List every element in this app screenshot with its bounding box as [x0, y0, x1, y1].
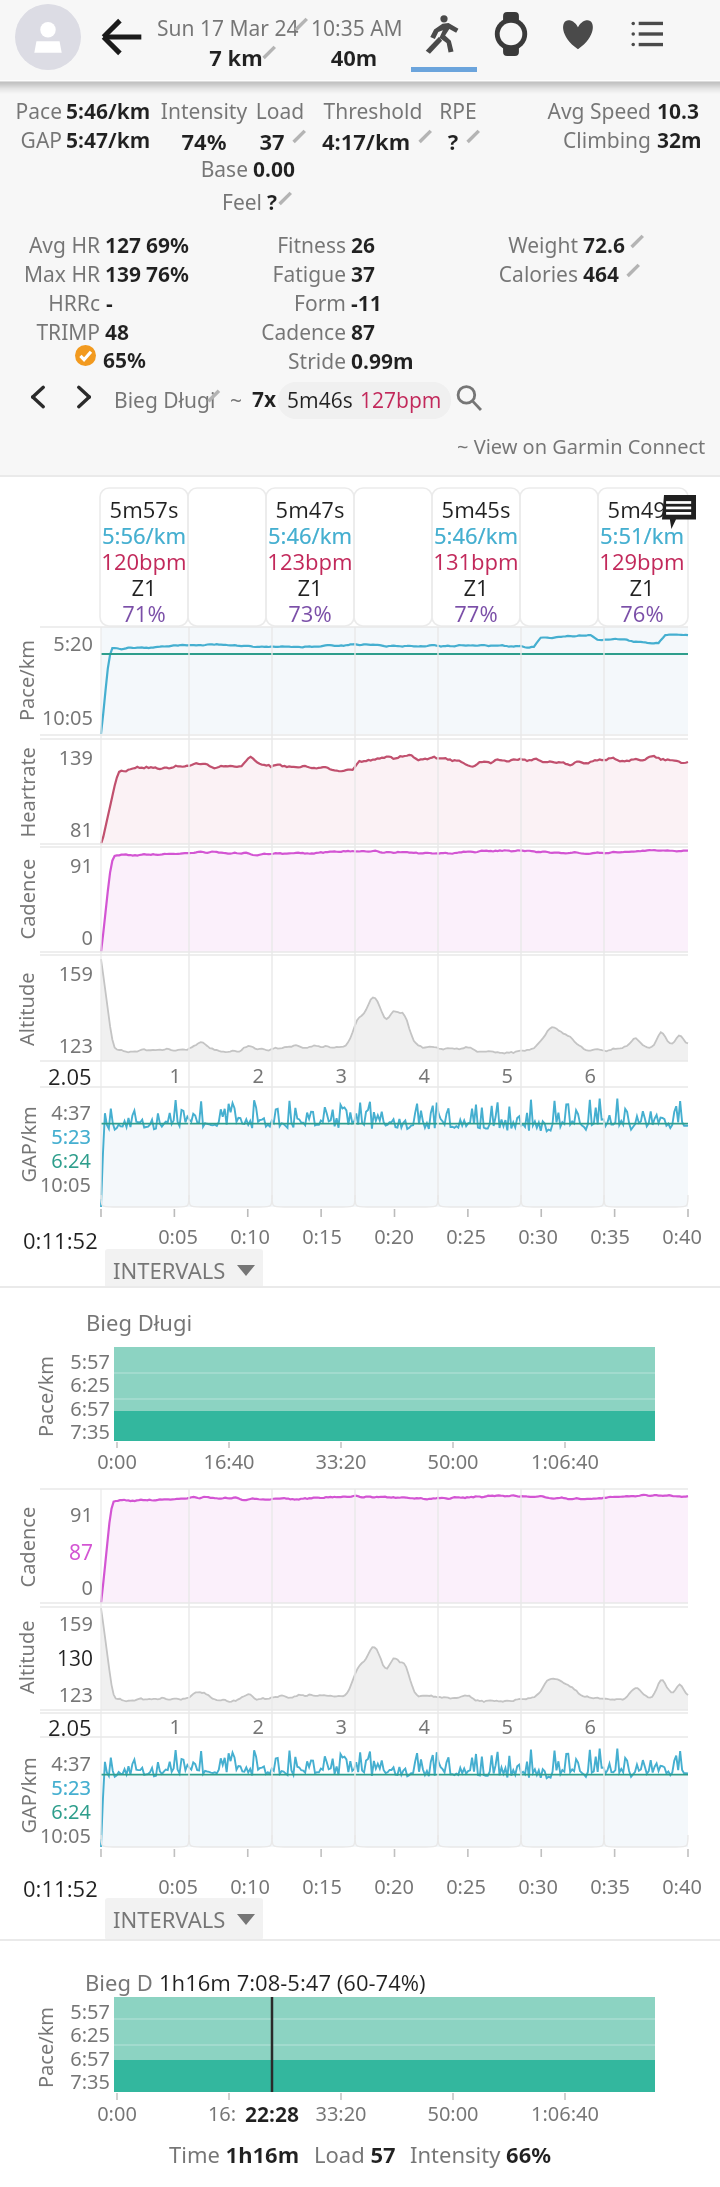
staticText: 6:57 [0, 2045, 110, 2072]
staticText: Form [146, 289, 346, 318]
staticText: 10.3 [657, 97, 699, 126]
staticText: 73% [210, 598, 410, 628]
staticText: 6:25 [0, 2021, 110, 2048]
staticText: 5:56/km [44, 520, 244, 550]
staticText: Altitude [13, 1620, 39, 1694]
button[interactable]: Next interval [68, 381, 100, 413]
staticText: Bieg Długi [86, 1307, 193, 1337]
staticText: 0:40 [582, 1873, 720, 1900]
staticText: 4:17/km [266, 126, 466, 156]
staticText: Bieg Długi [114, 386, 216, 415]
staticText: 0:15 [222, 1873, 422, 1900]
staticText: 71% [44, 598, 244, 628]
staticText: GAP [0, 126, 62, 155]
staticText: 87 [0, 1538, 93, 1567]
staticText: ~ [230, 386, 243, 415]
staticText: 1 [0, 1713, 181, 1740]
staticText: 0:00 [17, 2100, 217, 2127]
button[interactable]: Menu [613, 0, 681, 80]
staticText: 2.05 [48, 1712, 92, 1742]
staticText: Feel [62, 188, 262, 217]
staticText: 5:23 [0, 1774, 91, 1801]
button[interactable]: ~ View on Garmin Connect [457, 433, 706, 460]
staticText: INTERVALS [113, 1904, 226, 1934]
staticText: 7:35 [0, 2068, 110, 2095]
staticText: 127bpm [360, 386, 442, 415]
staticText: 129bpm [542, 546, 720, 576]
button[interactable]: Profile [15, 4, 81, 70]
staticText: 40m [254, 42, 454, 72]
staticText: Cadence [13, 858, 39, 939]
staticText: 77% [376, 598, 576, 628]
staticText: 0 [0, 924, 93, 951]
staticText: Pace [0, 97, 62, 126]
staticText: 5m45s [376, 494, 576, 524]
staticText: 72.6 [583, 231, 625, 260]
staticText: 0.99m [351, 347, 414, 376]
staticText: Cadence [13, 1506, 39, 1587]
staticText: 5:46/km [66, 97, 151, 126]
staticText: 6:25 [0, 1371, 110, 1398]
staticText: 130 [0, 1644, 93, 1673]
staticText: Avg HR [0, 231, 100, 260]
staticText: 0:25 [366, 1873, 566, 1900]
staticText: 6 [396, 1062, 596, 1089]
staticText: 120bpm [44, 546, 244, 576]
staticText: 69% [146, 231, 189, 260]
staticText: Stride [146, 347, 346, 376]
staticText: TRIMP [0, 318, 100, 347]
staticText: 0:30 [438, 1873, 638, 1900]
staticText: 3 [147, 1713, 347, 1740]
staticText: 0:05 [78, 1873, 278, 1900]
staticText: 48 [105, 318, 130, 347]
staticText: 76% [146, 260, 189, 289]
staticText: Z1 [376, 572, 576, 602]
staticText: 159 [0, 1610, 93, 1637]
staticText: 4:37 [0, 1750, 91, 1777]
staticText: 4 [230, 1713, 430, 1740]
staticText: 5 [313, 1062, 513, 1089]
staticText: 16: [122, 2100, 322, 2127]
staticText: Intensity 66% [410, 2139, 552, 2169]
staticText: 10:05 [0, 1822, 91, 1849]
staticText: -11 [351, 289, 382, 318]
staticText: Load 57 [314, 2139, 396, 2169]
button[interactable]: INTERVALS [105, 1249, 263, 1291]
button[interactable]: INTERVALS [105, 1898, 263, 1940]
staticText: 3 [147, 1062, 347, 1089]
staticText: 6 [396, 1713, 596, 1740]
staticText: 159 [0, 960, 93, 987]
staticText: 5m49s [542, 494, 720, 524]
button[interactable]: Notes [660, 495, 698, 529]
staticText: GAP/km [14, 1105, 40, 1182]
staticText: 5m46s [287, 386, 353, 415]
button[interactable]: Back [97, 12, 147, 62]
staticText: 0:10 [150, 1223, 350, 1250]
staticText: 10:05 [0, 704, 93, 731]
staticText: 5:57 [0, 1348, 110, 1375]
staticText: 4 [230, 1062, 430, 1089]
staticText: 1 [0, 1062, 181, 1089]
staticText: 22:28 [172, 2100, 372, 2129]
staticText: Avg Speed [451, 97, 651, 126]
staticText: 2.05 [48, 1061, 92, 1091]
staticText: 65% [103, 346, 146, 375]
staticText: INTERVALS [113, 1255, 226, 1285]
staticText: Z1 [210, 572, 410, 602]
staticText: 5:20 [0, 630, 93, 657]
staticText: HRRc [0, 289, 100, 318]
staticText: 10:35 AM [311, 14, 403, 43]
staticText: 74% [104, 126, 304, 156]
staticText: 33:20 [241, 1448, 441, 1475]
button[interactable]: 5m46s [278, 382, 451, 419]
staticText: GAP/km [14, 1756, 40, 1833]
staticText: 1:06:40 [465, 1448, 665, 1475]
button[interactable]: Previous interval [22, 381, 54, 413]
button[interactable]: Search [452, 381, 486, 415]
button[interactable]: Health [544, 0, 612, 80]
staticText: 91 [0, 1501, 93, 1528]
staticText: 91 [0, 852, 93, 879]
button[interactable]: Device [477, 0, 545, 80]
button[interactable]: Activities [410, 0, 478, 80]
staticText: 26 [351, 231, 376, 260]
